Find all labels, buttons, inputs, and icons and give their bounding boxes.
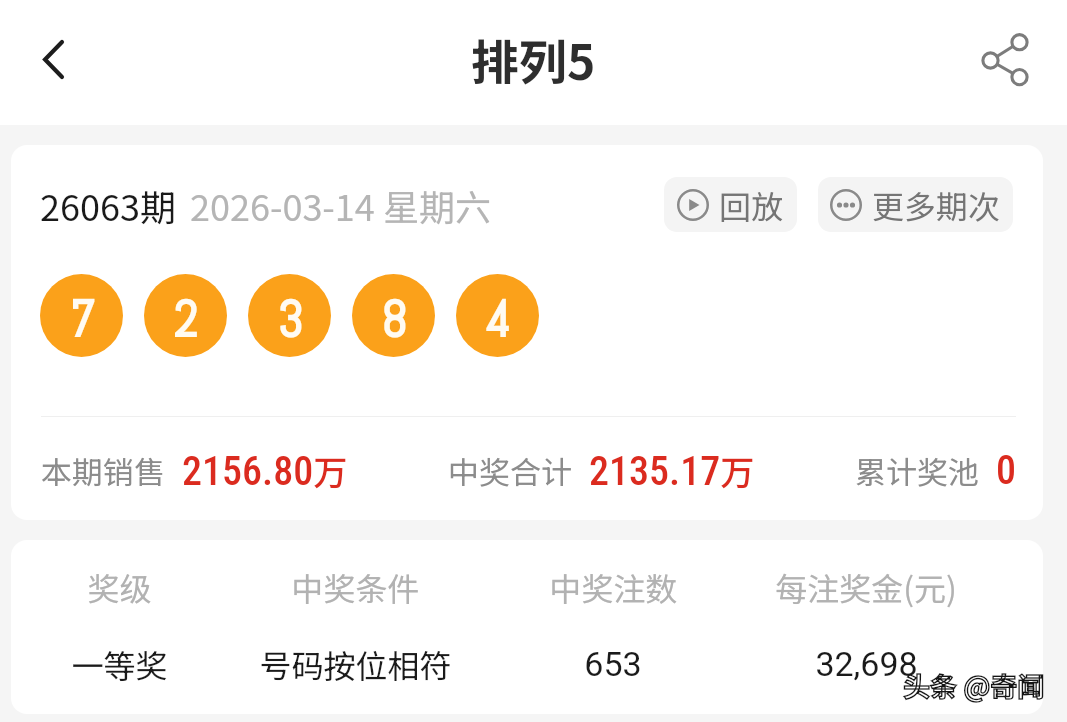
button[interactable]: 中奖注数 [463,561,763,613]
button[interactable]: Back [25,31,82,88]
staticText: 2 [173,288,198,352]
button[interactable]: 号码按位相符 [205,638,505,690]
staticText: 更多期次 [872,182,1001,228]
button[interactable]: 排列5 [471,24,596,94]
staticText: 32,698 [815,644,918,684]
staticText: 8 [381,288,407,352]
staticText: 2135.17万 [589,446,755,495]
button[interactable]: 累计奖池 [855,447,1016,494]
staticText: 26063期 [40,179,176,231]
staticText: 一等奖 [71,641,168,687]
button[interactable]: 本期销售 [41,446,348,495]
staticText: 每注奖金(元) [775,564,957,610]
staticText: 7 [69,288,95,352]
button[interactable]: 一等奖 [11,638,269,690]
staticText: 2026-03-14 星期六 [190,179,491,231]
staticText: 2156.80万 [182,446,348,495]
button[interactable]: 回放 [664,177,797,232]
button[interactable]: 653 [463,638,763,690]
staticText: 号码按位相符 [259,641,452,687]
staticText: 0 [996,447,1016,494]
staticText: 奖级 [87,564,152,610]
staticText: 回放 [719,182,784,228]
staticText: 头条 @奇闻 [903,666,1045,705]
button[interactable]: Share [975,27,1035,92]
button[interactable]: 更多期次 [818,177,1013,232]
staticText: 中奖条件 [291,564,420,610]
staticText: 中奖注数 [549,564,678,610]
button[interactable]: 32,698 [716,638,1016,690]
staticText: 中奖合计 [448,448,572,493]
button[interactable]: 中奖合计 [448,446,755,495]
staticText: 排列5 [471,24,596,94]
staticText: 累计奖池 [855,448,979,493]
staticText: 本期销售 [41,448,165,493]
staticText: 4 [485,288,511,352]
button[interactable]: 每注奖金(元) [716,561,1016,613]
button[interactable]: 中奖条件 [205,561,505,613]
staticText: 653 [584,644,642,684]
button[interactable]: 奖级 [11,561,269,613]
staticText: 3 [277,288,303,352]
